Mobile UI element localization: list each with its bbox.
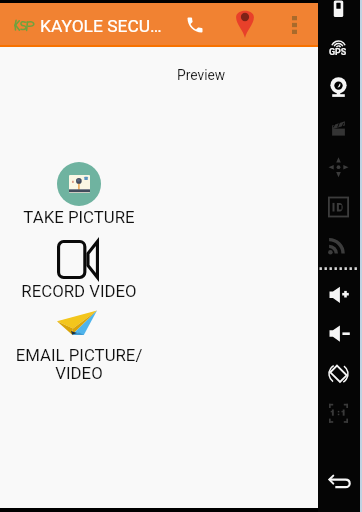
- staticText: GPS: [329, 47, 347, 57]
- button[interactable]: EMAIL PICTURE/ VIDEO: [9, 306, 149, 386]
- button[interactable]: TAKE PICTURE: [15, 157, 143, 225]
- staticText: Preview: [177, 67, 226, 83]
- button[interactable]: More options: [280, 11, 308, 39]
- staticText: KAYOLE SECU…: [40, 16, 162, 36]
- button[interactable]: Location: [231, 7, 259, 43]
- button[interactable]: RECORD VIDEO: [15, 236, 143, 300]
- staticText: EMAIL PICTURE/ VIDEO: [9, 345, 149, 383]
- button[interactable]: Call: [181, 11, 209, 39]
- staticText: TAKE PICTURE: [15, 207, 143, 227]
- staticText: RECORD VIDEO: [15, 281, 143, 301]
